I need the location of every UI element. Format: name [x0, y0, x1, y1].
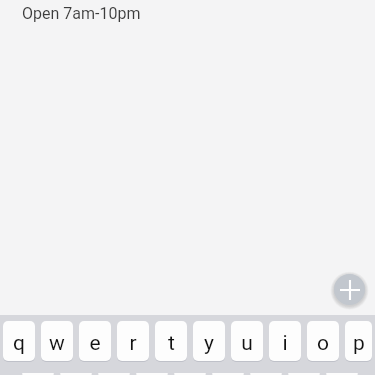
- button[interactable]: s: [60, 373, 92, 375]
- button[interactable]: j: [250, 373, 282, 375]
- staticText: e: [89, 331, 101, 356]
- staticText: i: [282, 331, 288, 356]
- button[interactable]: i: [269, 321, 301, 361]
- button[interactable]: k: [288, 373, 320, 375]
- button[interactable]: a: [22, 373, 54, 375]
- staticText: Open 7am-10pm: [22, 4, 141, 23]
- button[interactable]: r: [117, 321, 149, 361]
- button[interactable]: l: [326, 373, 358, 375]
- staticText: r: [129, 331, 137, 356]
- button[interactable]: y: [193, 321, 225, 361]
- staticText: q: [13, 331, 25, 356]
- button[interactable]: o: [307, 321, 339, 361]
- staticText: u: [241, 331, 253, 356]
- staticText: t: [168, 331, 175, 356]
- staticText: w: [49, 331, 65, 356]
- button[interactable]: d: [98, 373, 130, 375]
- staticText: o: [317, 331, 329, 356]
- button[interactable]: g: [174, 373, 206, 375]
- button[interactable]: f: [136, 373, 168, 375]
- button[interactable]: h: [212, 373, 244, 375]
- button[interactable]: t: [155, 321, 187, 361]
- button[interactable]: e: [79, 321, 111, 361]
- button[interactable]: p: [345, 321, 372, 361]
- button[interactable]: w: [41, 321, 73, 361]
- button[interactable]: Add: [334, 274, 365, 305]
- button[interactable]: q: [3, 321, 35, 361]
- button[interactable]: u: [231, 321, 263, 361]
- staticText: y: [204, 331, 214, 356]
- staticText: p: [353, 331, 365, 356]
